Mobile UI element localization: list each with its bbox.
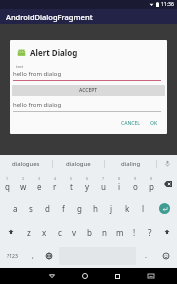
button[interactable]: . [138,244,154,268]
staticText: dialing [121,160,141,168]
button[interactable]: ! [127,220,142,244]
button[interactable]: dialogue [53,155,104,172]
button[interactable]: Change language [41,244,57,268]
button[interactable]: , [25,244,41,268]
staticText: v [72,227,77,238]
button[interactable]: f [55,196,71,220]
button[interactable]: n [97,220,112,244]
button[interactable]: Shift [0,220,21,244]
button[interactable]: c [52,220,67,244]
button[interactable]: s [23,196,39,220]
staticText: 3 [38,176,41,181]
staticText: 1 [6,176,9,181]
button[interactable]: ? [142,220,157,244]
staticText: dialogues [12,160,40,168]
button[interactable]: h [87,196,103,220]
staticText: w [20,181,27,192]
button[interactable]: a [7,196,23,220]
button[interactable]: CANCEL [118,118,143,129]
staticText: z [27,227,31,238]
button[interactable]: dialogues [0,155,52,172]
staticText: 2 [22,176,25,181]
staticText: 9 [134,176,137,181]
button[interactable]: Back [35,268,68,284]
button[interactable]: 7 [95,172,111,196]
button[interactable]: ACCEPT [12,85,165,96]
staticText: Alert Dialog [30,47,78,58]
button[interactable]: g [71,196,87,220]
staticText: n [102,227,107,238]
staticText: 8 [118,176,121,181]
staticText: 7 [102,176,105,181]
staticText: m [116,227,124,238]
staticText: d [45,203,50,214]
staticText: k [125,203,130,214]
staticText: CANCEL [121,120,140,127]
button[interactable]: 3 [31,172,47,196]
button[interactable]: OK [147,118,161,129]
staticText: ! [133,227,136,238]
staticText: OK [150,120,158,127]
button[interactable]: 8 [111,172,127,196]
staticText: r [53,181,57,192]
button[interactable]: dialing [105,155,156,172]
staticText: b [87,227,92,238]
staticText: 0 [150,176,153,181]
button[interactable]: 1 [0,172,15,196]
staticText: o [133,181,138,192]
button[interactable]: m [112,220,127,244]
button[interactable]: k [119,196,135,220]
button[interactable]: Recent apps [101,268,134,284]
staticText: . [145,251,147,261]
staticText: e [37,181,42,192]
staticText: text [16,64,24,69]
staticText: ?123 [7,253,18,260]
staticText: 11:36 [161,1,174,8]
button[interactable]: x [37,220,52,244]
staticText: p [149,181,154,192]
staticText: q [5,181,10,192]
button[interactable]: b [82,220,97,244]
staticText: hello from dialog [13,101,62,109]
staticText: j [110,203,113,214]
staticText: s [29,203,33,214]
staticText: y [85,181,90,192]
staticText: h [93,203,98,214]
button[interactable]: 9 [127,172,143,196]
button[interactable]: Home [68,268,101,284]
button[interactable]: v [67,220,82,244]
staticText: dialogue [66,160,91,168]
button[interactable]: Emoji [154,244,177,268]
staticText: c [58,227,62,238]
button[interactable]: z [21,220,37,244]
staticText: hello from dialog [13,70,62,78]
button[interactable]: Backspace [159,172,177,196]
staticText: ACCEPT [79,87,98,94]
staticText: u [101,181,106,192]
button[interactable]: 5 [63,172,79,196]
staticText: AndroidDialogFragment [6,12,93,22]
button[interactable]: Shift [157,220,177,244]
staticText: x [42,227,47,238]
button[interactable]: l [135,196,151,220]
button[interactable]: j [103,196,119,220]
button[interactable]: Hide keyboard [134,268,167,284]
button[interactable]: 2 [15,172,31,196]
button[interactable]: 4 [47,172,63,196]
staticText: 5 [70,176,73,181]
button[interactable]: 0 [143,172,159,196]
button[interactable]: Enter [151,196,177,220]
staticText: 4 [54,176,57,181]
button[interactable]: 6 [79,172,95,196]
staticText: a [13,203,18,214]
staticText: 6 [86,176,89,181]
staticText: i [118,181,121,192]
staticText: ? [148,227,152,238]
button[interactable]: d [39,196,55,220]
staticText: f [62,203,65,214]
staticText: t [70,181,73,192]
staticText: g [77,203,82,214]
button[interactable]: Voice input [157,155,177,172]
button[interactable]: ?123 [0,244,25,268]
